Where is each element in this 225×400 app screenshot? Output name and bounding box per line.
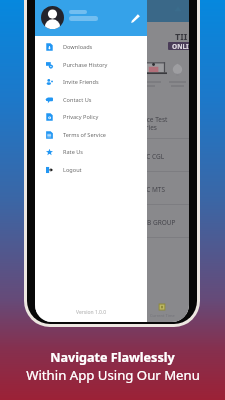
button[interactable]: Current Time	[145, 303, 179, 318]
staticText: Navigate Flawlessly	[50, 349, 175, 366]
button[interactable]: Edit profile	[35, 0, 147, 36]
staticText: Downloads	[63, 43, 93, 51]
staticText: Current Time	[150, 313, 175, 318]
button[interactable]: Downloads	[35, 38, 147, 56]
staticText: Contact Us	[63, 96, 92, 104]
staticText: Privacy Policy	[63, 113, 99, 121]
staticText: ONLI	[172, 42, 189, 50]
staticText: Purchase History	[63, 61, 108, 69]
staticText: RRB GROUP	[139, 218, 176, 227]
button[interactable]: Terms of Service	[35, 126, 147, 143]
staticText: SSC MTS	[139, 185, 166, 194]
staticText: Within App Using Our Menu	[26, 366, 200, 384]
staticText: Terms of Service	[63, 131, 106, 139]
button[interactable]: Rate Us	[35, 143, 147, 161]
button[interactable]: Invite Friends	[35, 73, 147, 91]
staticText: SSC CGL	[139, 152, 165, 161]
button[interactable]: ance Test series	[35, 104, 189, 139]
staticText: Version 1.0.0	[76, 309, 107, 316]
button[interactable]: Logout	[35, 161, 147, 178]
staticText: Invite Friends	[63, 78, 99, 86]
button[interactable]: Edit profile	[128, 11, 142, 25]
staticText: TII	[175, 30, 188, 42]
button[interactable]: Contact Us	[35, 91, 147, 108]
button[interactable]: SSC CGL	[35, 139, 189, 172]
button[interactable]: Privacy Policy	[35, 108, 147, 126]
staticText: ance Test series	[139, 115, 168, 132]
button[interactable]: RRB GROUP	[35, 205, 189, 238]
staticText: Logout	[63, 166, 82, 174]
button[interactable]: Purchase History	[35, 56, 147, 73]
button[interactable]: SSC MTS	[35, 172, 189, 205]
staticText: Rate Us	[63, 148, 84, 156]
